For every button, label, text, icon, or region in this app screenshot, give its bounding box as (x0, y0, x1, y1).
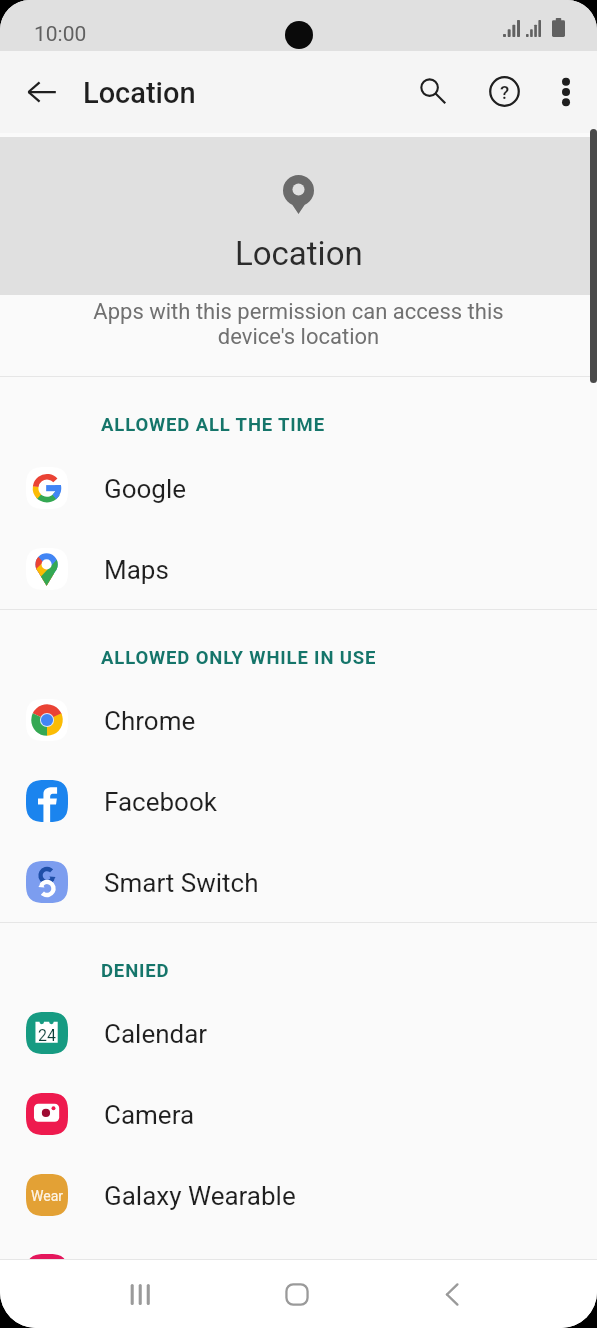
button[interactable]: Navigate up (0, 51, 83, 133)
staticText: Galaxy Wearable (104, 1181, 296, 1211)
staticText: Chrome (104, 706, 196, 736)
staticText: Google (104, 474, 187, 504)
staticText: Facebook (104, 787, 217, 817)
button[interactable]: Search (394, 57, 464, 127)
button[interactable]: 24 (0, 992, 597, 1073)
button[interactable]: Recents (102, 1260, 179, 1328)
staticText: Maps (104, 555, 169, 585)
staticText: ALLOWED ONLY WHILE IN USE (101, 647, 377, 669)
staticText: Apps with this permission can access thi… (93, 299, 504, 350)
button[interactable]: Maps (0, 528, 597, 609)
button[interactable]: Camera (0, 1073, 597, 1154)
staticText: Calendar (104, 1019, 208, 1049)
staticText: Wear (31, 1188, 63, 1204)
button[interactable]: More options (534, 51, 597, 133)
button[interactable]: Back (413, 1260, 490, 1328)
button[interactable]: Facebook (0, 760, 597, 841)
staticText: ? (500, 81, 510, 103)
staticText: Camera (104, 1100, 195, 1130)
staticText: ALLOWED ALL THE TIME (101, 414, 325, 436)
staticText: Smart Switch (104, 868, 259, 898)
staticText: DENIED (101, 960, 170, 982)
button[interactable]: Google (0, 447, 597, 528)
button[interactable]: Home (258, 1260, 335, 1328)
staticText: Location (83, 76, 196, 110)
button[interactable]: Smart Switch (0, 841, 597, 922)
staticText: Location (235, 234, 363, 273)
button[interactable]: Wear (0, 1154, 597, 1235)
button[interactable]: Help (464, 57, 534, 127)
button[interactable]: Chrome (0, 679, 597, 760)
staticText: 10:00 (34, 22, 87, 47)
staticText: 24 (38, 1026, 56, 1045)
